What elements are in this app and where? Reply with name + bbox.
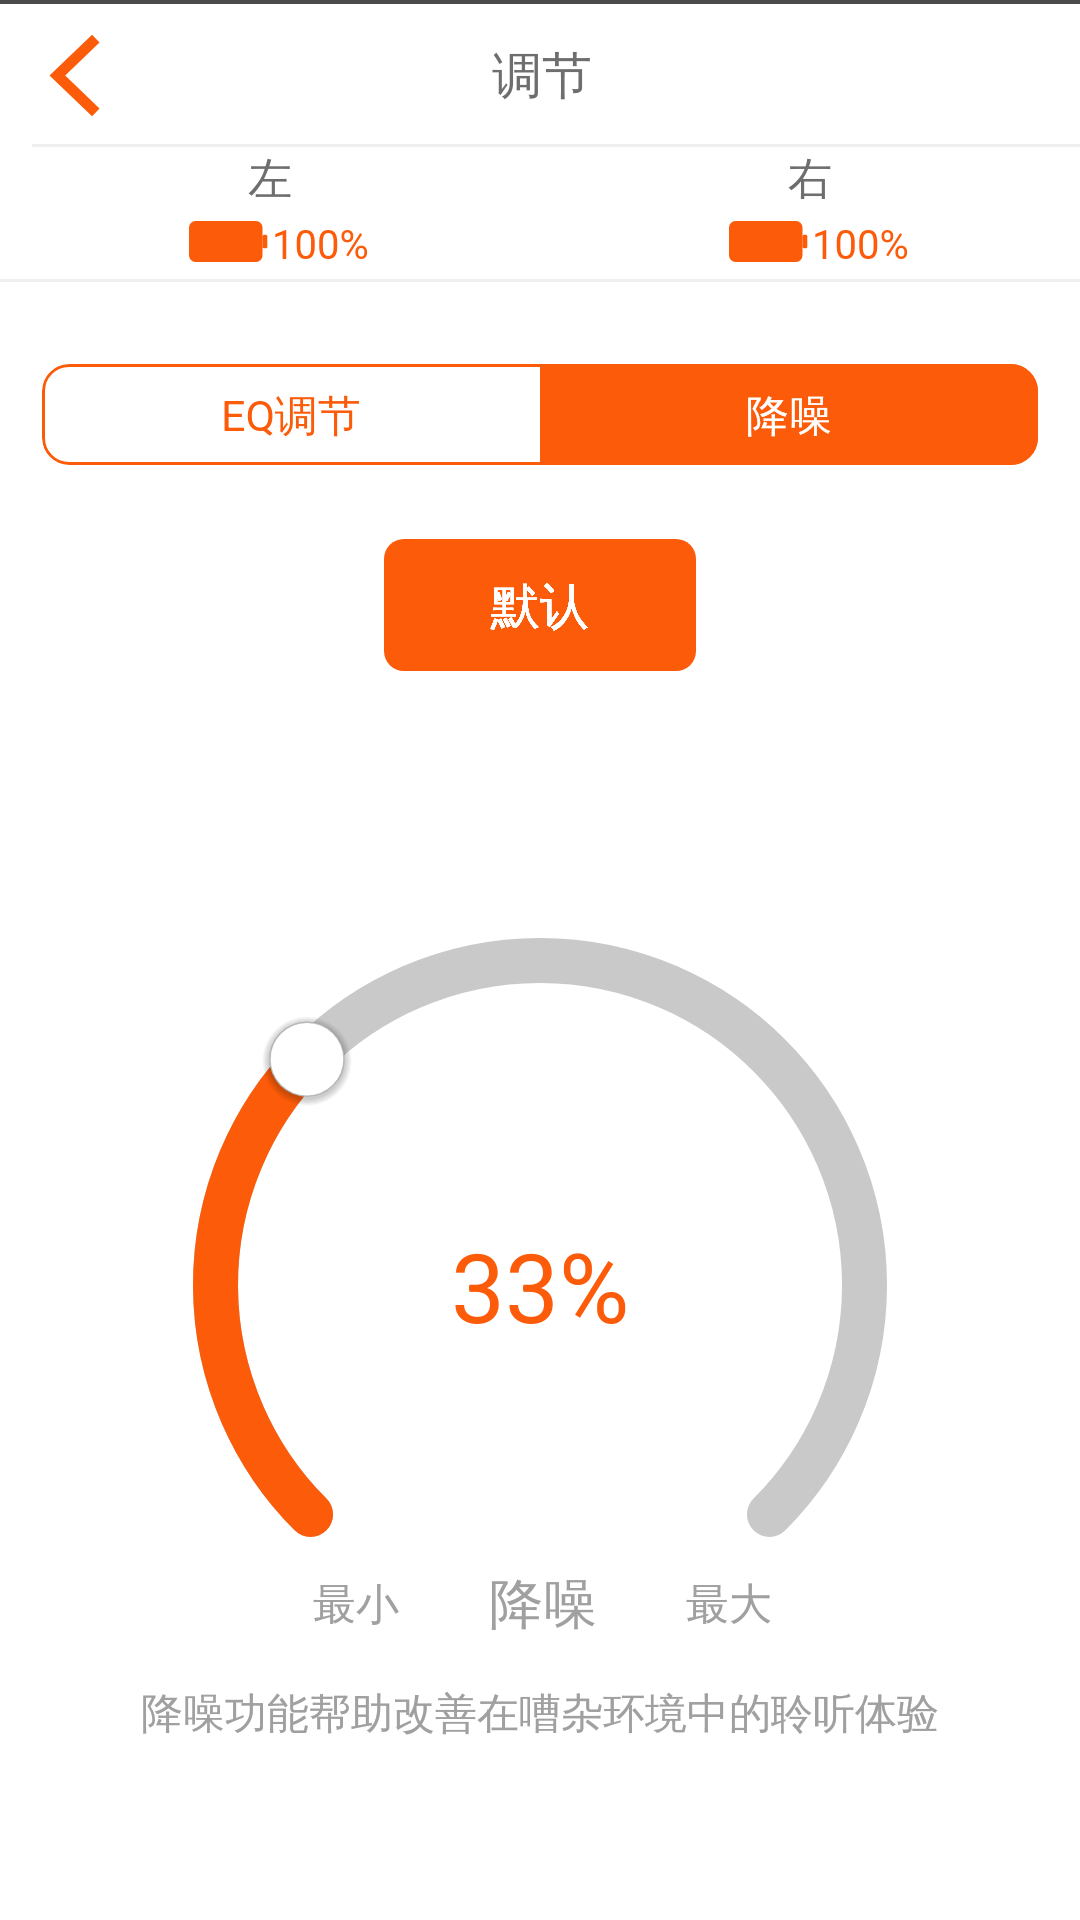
staticText: 默认: [491, 576, 589, 638]
button[interactable]: Back: [20, 15, 140, 135]
button[interactable]: EQ调节: [42, 364, 540, 465]
staticText: 右: [788, 152, 832, 207]
staticText: 100%: [812, 222, 909, 269]
staticText: 降噪: [489, 1571, 597, 1639]
staticText: 默认: [491, 576, 589, 638]
staticText: 最小: [313, 1578, 399, 1632]
staticText: 调节: [492, 45, 592, 108]
staticText: 最大: [686, 1578, 772, 1632]
staticText: 降噪: [746, 390, 832, 444]
staticText: 左: [248, 152, 292, 207]
button[interactable]: Noise cancelling level slider: [185, 930, 895, 1640]
button[interactable]: 降噪: [540, 364, 1038, 465]
staticText: 33%: [451, 1234, 630, 1347]
staticText: 默认: [491, 576, 589, 638]
button[interactable]: 默认: [384, 539, 696, 671]
staticText: 100%: [272, 222, 369, 269]
staticText: 降噪功能帮助改善在嘈杂环境中的聆听体验: [141, 1688, 939, 1741]
staticText: 默认: [491, 576, 589, 638]
staticText: EQ调节: [221, 390, 362, 444]
